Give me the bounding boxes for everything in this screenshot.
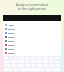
button[interactable] [3, 31, 61, 35]
button[interactable] [3, 35, 61, 39]
button[interactable] [3, 47, 61, 51]
button[interactable] [3, 43, 61, 47]
button[interactable] [3, 27, 61, 31]
staticText: Assign a conversation to the right perso… [0, 3, 64, 10]
button[interactable] [3, 23, 61, 27]
button[interactable] [3, 39, 61, 43]
button[interactable] [3, 51, 61, 55]
